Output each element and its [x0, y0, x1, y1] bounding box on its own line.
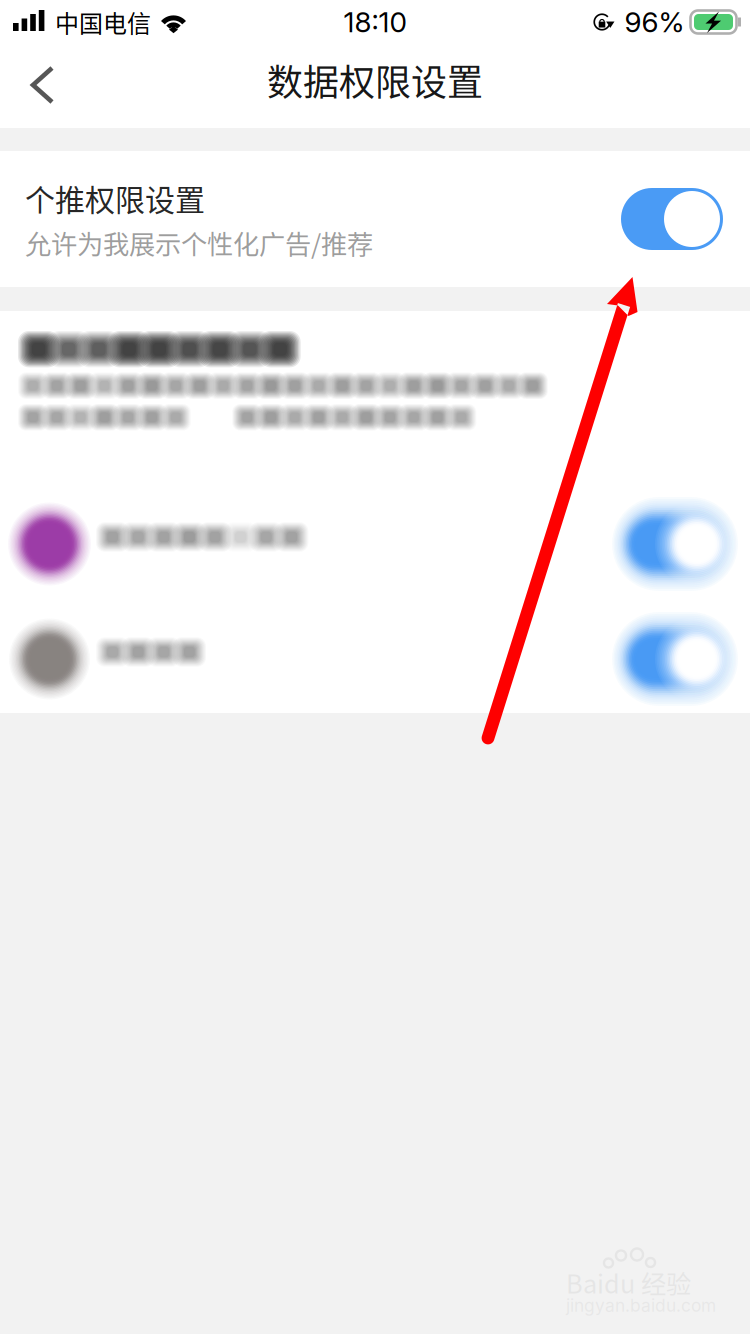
staticText: 18:10 — [343, 5, 406, 39]
staticText: 中国电信 — [55, 5, 151, 39]
staticText: 96% — [624, 5, 684, 39]
staticText: 数据权限设置 — [267, 54, 483, 106]
button[interactable]: 返回 — [19, 56, 85, 116]
staticText: jingyan.baidu.com — [566, 1295, 716, 1316]
button[interactable]: 个推权限设置 — [621, 188, 723, 250]
staticText: 允许为我展示个性化广告/推荐 — [25, 224, 373, 262]
staticText: 个推权限设置 — [25, 176, 205, 220]
staticText: Baidu 经验 — [566, 1264, 691, 1301]
